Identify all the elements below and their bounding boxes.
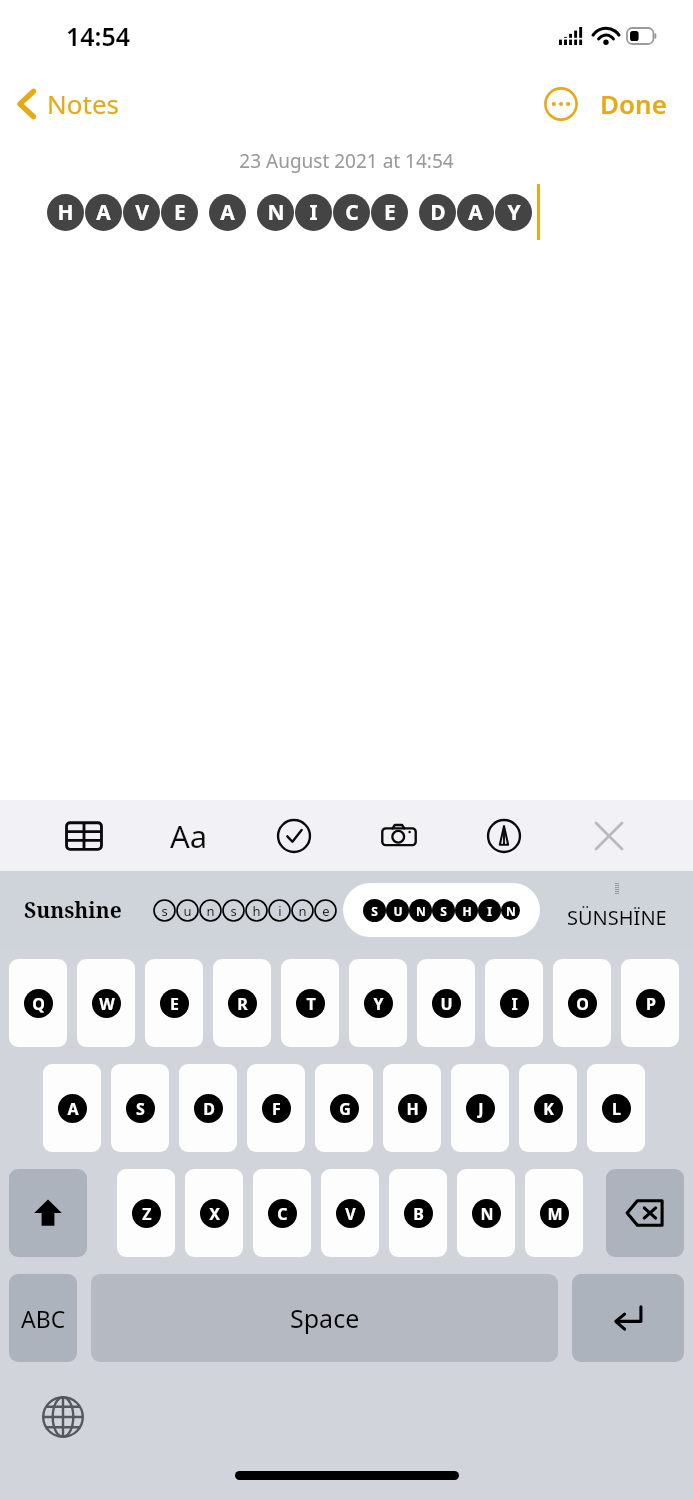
button[interactable]: U (417, 959, 475, 1047)
staticText: H (57, 198, 74, 227)
staticText: O (576, 993, 589, 1015)
staticText: D (203, 1098, 215, 1120)
staticText: S (440, 903, 447, 919)
staticText: I (511, 993, 518, 1015)
staticText: s (161, 902, 168, 920)
button[interactable]: I (485, 959, 543, 1047)
button[interactable]: Markup (480, 812, 528, 860)
button[interactable]: Close keyboard (585, 812, 633, 860)
staticText: I (309, 198, 318, 227)
button[interactable]: W (77, 959, 135, 1047)
button[interactable]: Space (91, 1274, 558, 1362)
button[interactable]: Z (117, 1169, 175, 1257)
staticText: s (230, 902, 237, 920)
button[interactable]: X (185, 1169, 243, 1257)
button[interactable]: Return (572, 1274, 684, 1362)
staticText: D (430, 198, 446, 227)
staticText: n (298, 902, 307, 920)
button[interactable]: S (111, 1064, 169, 1152)
staticText: G (339, 1098, 351, 1120)
staticText: Y (507, 198, 521, 227)
staticText: F (272, 1098, 281, 1120)
staticText: Aa (170, 815, 208, 857)
staticText: W (99, 993, 115, 1015)
staticText: 23 August 2021 at 14:54 (239, 148, 454, 174)
button[interactable]: O (553, 959, 611, 1047)
button[interactable]: Backspace (606, 1169, 684, 1257)
button[interactable]: K (519, 1064, 577, 1152)
staticText: SÜNSHÏNE (567, 904, 667, 931)
button[interactable]: F (247, 1064, 305, 1152)
button[interactable]: L (587, 1064, 645, 1152)
staticText: R (237, 993, 248, 1015)
staticText: V (345, 1203, 356, 1225)
staticText: C (277, 1203, 288, 1225)
staticText: E (384, 198, 396, 227)
staticText: B (413, 1203, 424, 1225)
button[interactable]: G (315, 1064, 373, 1152)
staticText: I (487, 903, 492, 919)
button[interactable]: Switch keyboard (36, 1390, 90, 1444)
button[interactable]: M (525, 1169, 583, 1257)
button[interactable]: E (145, 959, 203, 1047)
staticText: n (206, 902, 215, 920)
staticText: Y (373, 993, 384, 1015)
button[interactable]: Q (9, 959, 67, 1047)
staticText: J (478, 1098, 484, 1120)
button[interactable]: H (383, 1064, 441, 1152)
button[interactable]: R (213, 959, 271, 1047)
button[interactable]: ̈̈̈̈̈̈ (540, 871, 693, 949)
button[interactable]: N (457, 1169, 515, 1257)
staticText: S (136, 1098, 145, 1120)
staticText: H (462, 903, 472, 919)
staticText: Sunshine (24, 896, 122, 925)
staticText: L (612, 1098, 621, 1120)
button[interactable]: Done (596, 80, 671, 127)
staticText: N (416, 903, 426, 919)
button[interactable]: T (281, 959, 339, 1047)
staticText: T (306, 993, 316, 1015)
button[interactable]: Checklist (270, 812, 318, 860)
button[interactable]: C (253, 1169, 311, 1257)
staticText: Z (142, 1203, 152, 1225)
staticText: Space (290, 1301, 360, 1335)
staticText: X (209, 1203, 220, 1225)
button[interactable]: Notes (16, 86, 119, 121)
button[interactable]: B (389, 1169, 447, 1257)
button[interactable]: Table (60, 812, 108, 860)
staticText: h (252, 902, 261, 920)
staticText: N (480, 1203, 494, 1225)
button[interactable]: Shift (9, 1169, 87, 1257)
button[interactable]: s (146, 871, 343, 949)
staticText: S (371, 903, 378, 919)
button[interactable]: P (621, 959, 679, 1047)
button[interactable]: Sunshine (0, 871, 146, 949)
staticText: A (96, 198, 111, 227)
staticText: Notes (47, 86, 119, 121)
button[interactable]: J (451, 1064, 509, 1152)
staticText: Q (32, 993, 45, 1015)
button[interactable]: Y (349, 959, 407, 1047)
staticText: U (440, 993, 453, 1015)
button[interactable]: S (343, 871, 540, 949)
button[interactable]: V (321, 1169, 379, 1257)
staticText: N (267, 198, 285, 227)
staticText: K (543, 1098, 554, 1120)
button[interactable]: Camera (375, 812, 423, 860)
staticText: E (174, 198, 186, 227)
staticText: A (468, 198, 483, 227)
staticText: e (322, 902, 330, 920)
staticText: M (547, 1203, 563, 1225)
staticText: C (345, 198, 359, 227)
button[interactable]: More options (540, 83, 582, 125)
staticText: i (278, 902, 282, 920)
button[interactable]: ABC (9, 1274, 77, 1362)
button[interactable]: A (43, 1064, 101, 1152)
staticText: A (67, 1098, 79, 1120)
button[interactable]: D (179, 1064, 237, 1152)
staticText: 14:54 (66, 19, 131, 53)
staticText: V (135, 198, 149, 227)
button[interactable]: Aa (165, 812, 213, 860)
staticText: U (393, 903, 403, 919)
staticText: E (170, 993, 179, 1015)
